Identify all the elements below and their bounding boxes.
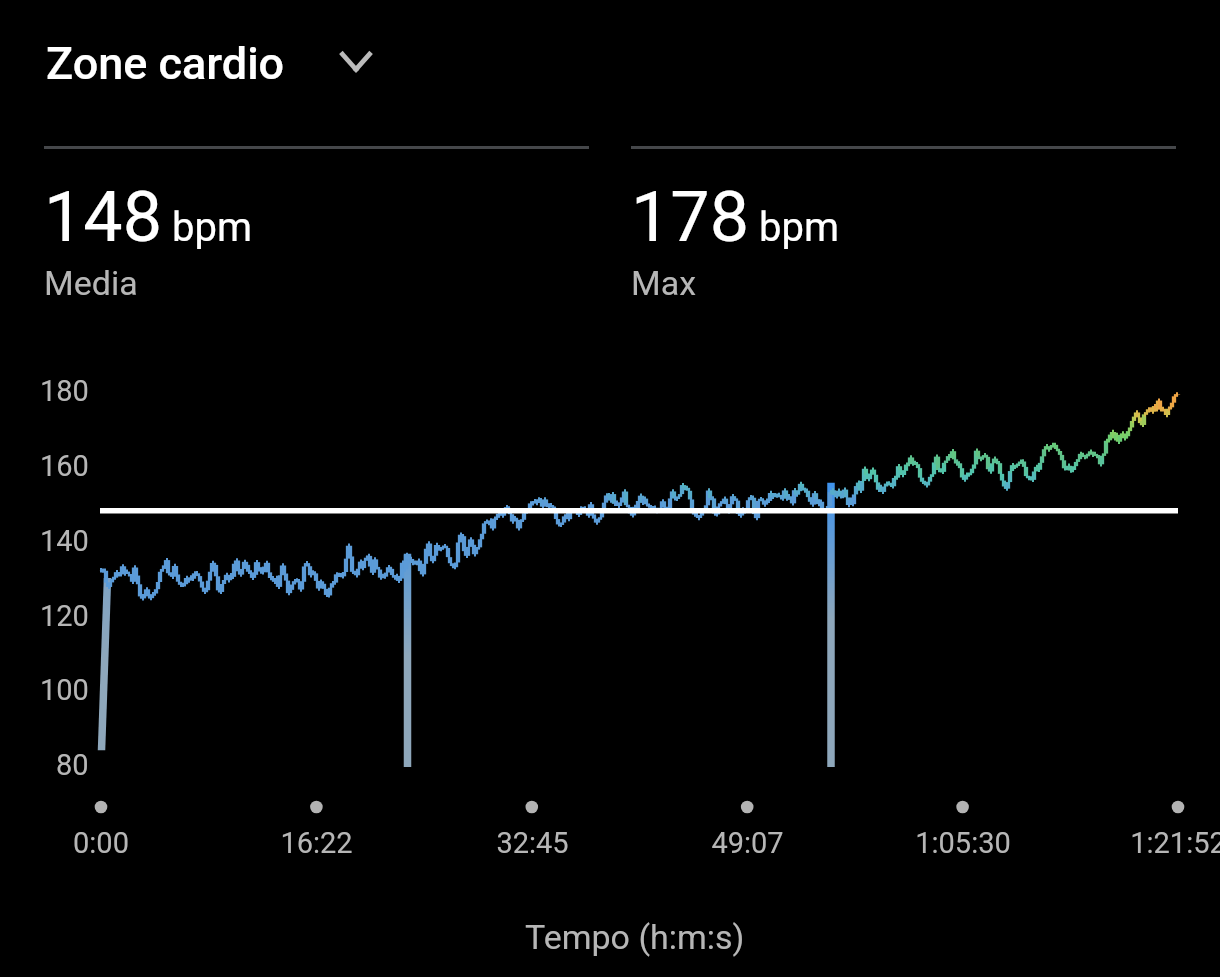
staticText: 140 [40, 524, 89, 558]
staticText: 148 [44, 176, 163, 258]
staticText: Tempo (h:m:s) [525, 917, 745, 957]
staticText: 180 [40, 374, 89, 408]
staticText: 100 [40, 673, 89, 707]
staticText: bpm [759, 204, 839, 251]
staticText: 0:00 [73, 826, 129, 860]
staticText: Max [631, 263, 697, 303]
staticText: 16:22 [280, 826, 353, 860]
staticText: 178 [631, 176, 750, 258]
staticText: 49:07 [711, 826, 784, 860]
staticText: bpm [172, 204, 252, 251]
staticText: Zone cardio [46, 37, 285, 90]
staticText: 1:05:30 [915, 826, 1011, 860]
other: Expand heart rate zone [333, 40, 379, 86]
staticText: 1:21:52 [1130, 826, 1220, 860]
staticText: 80 [56, 748, 89, 782]
staticText: Media [44, 263, 138, 303]
staticText: 160 [40, 449, 89, 483]
button[interactable]: Zone cardio [46, 33, 379, 93]
staticText: 120 [40, 599, 89, 633]
staticText: 32:45 [496, 826, 569, 860]
